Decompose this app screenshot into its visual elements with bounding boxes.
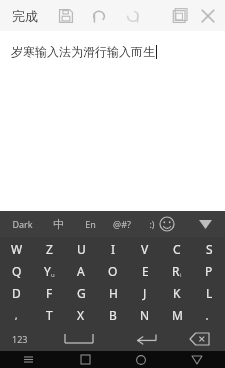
- button[interactable]: 123: [0, 326, 40, 351]
- staticText: M: [172, 307, 183, 323]
- staticText: V: [141, 241, 149, 257]
- button[interactable]: 中: [40, 211, 76, 237]
- staticText: E: [142, 263, 149, 279]
- button[interactable]: A: [65, 260, 97, 282]
- button[interactable]: Y: [33, 260, 65, 282]
- button[interactable]: R: [161, 260, 193, 282]
- staticText: D: [12, 285, 21, 301]
- button[interactable]: Menu: [0, 351, 57, 368]
- button[interactable]: En: [72, 211, 108, 237]
- button[interactable]: M: [161, 304, 193, 326]
- button[interactable]: B: [97, 304, 129, 326]
- button[interactable]: Emoji: [154, 211, 180, 237]
- button[interactable]: J: [129, 282, 161, 304]
- staticText: S: [206, 241, 213, 257]
- button[interactable]: O: [97, 260, 129, 282]
- button[interactable]: Z: [33, 237, 65, 260]
- button[interactable]: F: [33, 282, 65, 304]
- button[interactable]: L: [193, 282, 225, 304]
- button[interactable]: T: [33, 304, 65, 326]
- staticText: 岁寒输入法为滑行输入而生: [11, 44, 155, 59]
- button[interactable]: Undo: [85, 2, 113, 30]
- staticText: P: [205, 263, 213, 279]
- staticText: L: [206, 285, 213, 301]
- staticText: @#?: [113, 218, 131, 230]
- button[interactable]: 岁寒输入法为滑行输入而生: [0, 31, 225, 211]
- button[interactable]: N: [129, 304, 161, 326]
- button[interactable]: Redo: [119, 2, 147, 30]
- button[interactable]: Hide keyboard: [190, 211, 220, 237]
- staticText: En: [85, 218, 96, 230]
- staticText: H: [109, 285, 118, 301]
- button[interactable]: Save: [52, 2, 80, 30]
- button[interactable]: G: [65, 282, 97, 304]
- staticText: T: [46, 307, 53, 323]
- button[interactable]: K: [161, 282, 193, 304]
- staticText: u: [51, 271, 55, 279]
- staticText: A: [77, 263, 85, 279]
- button[interactable]: 完成: [6, 4, 44, 28]
- button[interactable]: V: [129, 237, 161, 260]
- button[interactable]: X: [65, 304, 97, 326]
- button[interactable]: D: [0, 282, 33, 304]
- staticText: J: [143, 285, 147, 301]
- button[interactable]: P: [193, 260, 225, 282]
- staticText: Q: [12, 263, 22, 279]
- staticText: Dark: [12, 218, 33, 230]
- button[interactable]: Space: [40, 326, 118, 351]
- button[interactable]: E: [129, 260, 161, 282]
- staticText: G: [77, 285, 86, 301]
- button[interactable]: Back: [169, 351, 225, 368]
- button[interactable]: I: [97, 237, 129, 260]
- staticText: 。: [205, 310, 214, 321]
- button[interactable]: :): [134, 211, 170, 237]
- staticText: F: [46, 285, 53, 301]
- button[interactable]: Backspace: [174, 326, 225, 351]
- staticText: Z: [46, 241, 53, 257]
- button[interactable]: Enter: [118, 326, 174, 351]
- button[interactable]: Recents: [57, 351, 113, 368]
- button[interactable]: 。: [193, 304, 225, 326]
- button[interactable]: W: [0, 237, 33, 260]
- staticText: 123: [12, 333, 28, 345]
- staticText: 完成: [12, 8, 38, 24]
- staticText: ,: [15, 309, 18, 321]
- staticText: X: [77, 307, 85, 323]
- staticText: i: [180, 271, 182, 279]
- button[interactable]: Dark: [4, 211, 40, 237]
- staticText: I: [111, 241, 116, 257]
- button[interactable]: S: [193, 237, 225, 260]
- staticText: :): [149, 218, 155, 230]
- staticText: O: [108, 263, 118, 279]
- staticText: N: [140, 307, 150, 323]
- staticText: U: [77, 241, 86, 257]
- button[interactable]: H: [97, 282, 129, 304]
- button[interactable]: Pages: [166, 2, 194, 30]
- button[interactable]: Home: [113, 351, 169, 368]
- staticText: Y: [44, 263, 51, 279]
- button[interactable]: C: [161, 237, 193, 260]
- button[interactable]: Close: [194, 2, 222, 30]
- button[interactable]: U: [65, 237, 97, 260]
- button[interactable]: @#?: [104, 211, 140, 237]
- staticText: C: [173, 241, 181, 257]
- staticText: K: [173, 285, 181, 301]
- button[interactable]: ,: [0, 304, 33, 326]
- button[interactable]: Q: [0, 260, 33, 282]
- staticText: W: [11, 241, 23, 257]
- staticText: R: [172, 263, 180, 279]
- staticText: B: [109, 307, 117, 323]
- staticText: 中: [53, 217, 64, 231]
